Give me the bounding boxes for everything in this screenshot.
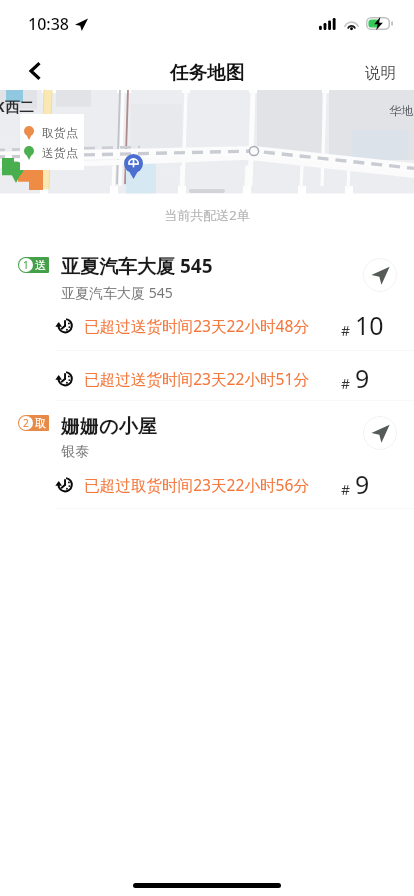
staticText: 取 xyxy=(35,416,46,430)
button[interactable]: 已超过取货时间23天22小时56分 xyxy=(0,461,414,507)
button[interactable]: 2 xyxy=(0,414,414,466)
staticText: 当前共配送2单 xyxy=(0,206,414,224)
button[interactable]: 已超过送货时间23天22小时51分 xyxy=(0,355,414,401)
button[interactable]: 1 xyxy=(0,252,414,304)
staticText: K西二 xyxy=(0,96,34,116)
staticText: 亚夏汽车大厦 545 xyxy=(61,283,173,302)
staticText: 已超过取货时间23天22小时56分 xyxy=(84,474,310,495)
staticText: 2 xyxy=(23,416,29,430)
staticText: 送货点 xyxy=(42,145,78,160)
staticText: 任务地图 xyxy=(170,61,244,84)
staticText: # xyxy=(341,480,351,499)
staticText: 姗姗の小屋 xyxy=(61,415,157,439)
staticText: 华地 xyxy=(389,103,413,118)
button[interactable]: Back xyxy=(0,47,62,93)
staticText: 9 xyxy=(355,361,370,395)
staticText: 已超过送货时间23天22小时48分 xyxy=(84,315,310,336)
button[interactable]: Navigate xyxy=(363,416,397,450)
staticText: 10:38 xyxy=(28,13,69,35)
staticText: 说明 xyxy=(365,63,396,83)
staticText: 10 xyxy=(355,308,384,342)
staticText: 9 xyxy=(355,467,370,501)
button[interactable]: 已超过送货时间23天22小时48分 xyxy=(0,302,414,348)
staticText: 取货点 xyxy=(42,125,78,140)
button[interactable]: 说明 xyxy=(343,47,414,93)
staticText: 送 xyxy=(35,258,46,272)
staticText: 银泰 xyxy=(61,443,89,461)
staticText: 亚夏汽车大厦 545 xyxy=(61,253,213,279)
staticText: # xyxy=(341,321,351,340)
staticText: 1 xyxy=(23,258,29,272)
button[interactable]: Navigate xyxy=(363,258,397,292)
staticText: 已超过送货时间23天22小时51分 xyxy=(84,368,310,389)
staticText: # xyxy=(341,374,351,393)
